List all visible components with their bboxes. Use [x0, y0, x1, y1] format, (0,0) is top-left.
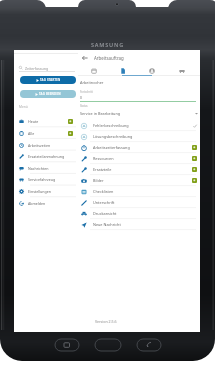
button[interactable]: Kunde — [138, 64, 166, 77]
staticText: SAMSUNG — [0, 41, 215, 48]
staticText: Service in Bearbeitung — [80, 111, 121, 116]
staticText: Ersatzteile — [93, 167, 112, 172]
staticText: Status — [80, 104, 88, 108]
button[interactable]: Abmelden — [16, 197, 73, 209]
button[interactable]: TAG BEENDEN — [20, 90, 76, 98]
staticText: Checklisten — [93, 189, 114, 194]
staticText: Fortschritt — [80, 90, 93, 94]
staticText: Nachrichten — [28, 166, 49, 171]
staticText: Menü — [19, 105, 28, 109]
staticText: TAG BEENDEN — [39, 92, 61, 96]
button[interactable]: Servicefahrzeug — [16, 173, 73, 185]
staticText: Heute — [28, 119, 39, 124]
button[interactable]: Bilder — [78, 175, 200, 186]
button[interactable]: Termine — [80, 64, 108, 77]
button[interactable]: Ressourcen — [78, 153, 200, 164]
staticText: Einstellungen — [28, 189, 51, 194]
button[interactable]: TAG STARTEN — [20, 76, 76, 84]
staticText: Arbeitszeiterfassung — [93, 145, 130, 150]
button[interactable]: Neue Nachricht — [78, 219, 200, 230]
button[interactable]: Einstellungen — [16, 185, 73, 197]
button[interactable]: Heute — [16, 115, 73, 127]
button[interactable]: Service in Bearbeitung — [80, 109, 198, 117]
staticText: Servicefahrzeug — [28, 177, 56, 182]
staticText: Lösungsbeschreibung — [93, 134, 133, 139]
staticText: Fehlerbeschreibung — [93, 123, 129, 128]
staticText: Zeiterfassung — [25, 66, 49, 71]
button[interactable]: Auftrag — [109, 64, 137, 77]
staticText: Ressourcen — [93, 156, 114, 161]
staticText: Unterschrift — [93, 200, 115, 205]
staticText: 0 — [80, 95, 82, 100]
button[interactable]: Ersatzteile — [78, 164, 200, 175]
button[interactable]: Nachrichten — [16, 162, 73, 174]
staticText: Alle — [28, 131, 35, 136]
staticText: Abmelden — [28, 201, 46, 206]
staticText: Bilder — [93, 178, 104, 183]
button[interactable]: Lösungsbeschreibung — [78, 131, 200, 142]
button[interactable]: Arbeitszeiten — [16, 139, 73, 151]
button[interactable]: Back — [80, 53, 89, 62]
staticText: Arbeitszeiten — [28, 143, 51, 148]
button[interactable]: Zeiterfassung — [19, 64, 75, 72]
staticText: TAG STARTEN — [40, 78, 61, 82]
button[interactable]: Alle — [16, 127, 73, 139]
staticText: Arbeitsauftrag — [94, 55, 124, 61]
staticText: Ersatzteilanmahnung — [28, 154, 65, 159]
staticText: Neue Nachricht — [93, 222, 121, 227]
button[interactable]: Checklisten — [78, 186, 200, 197]
button[interactable]: Ersatzteilanmahnung — [16, 150, 73, 162]
button[interactable]: Druckansicht — [78, 208, 200, 219]
button[interactable]: Arbeitszeiterfassung — [78, 142, 200, 153]
staticText: Arbeitnocher — [80, 80, 104, 85]
button[interactable]: Unterschrift — [78, 197, 200, 208]
staticText: Druckansicht — [93, 211, 117, 216]
staticText: Version 2.5.6 — [95, 319, 117, 324]
button[interactable]: Fahrzeug — [168, 64, 196, 77]
button[interactable]: Fehlerbeschreibung — [78, 120, 200, 131]
